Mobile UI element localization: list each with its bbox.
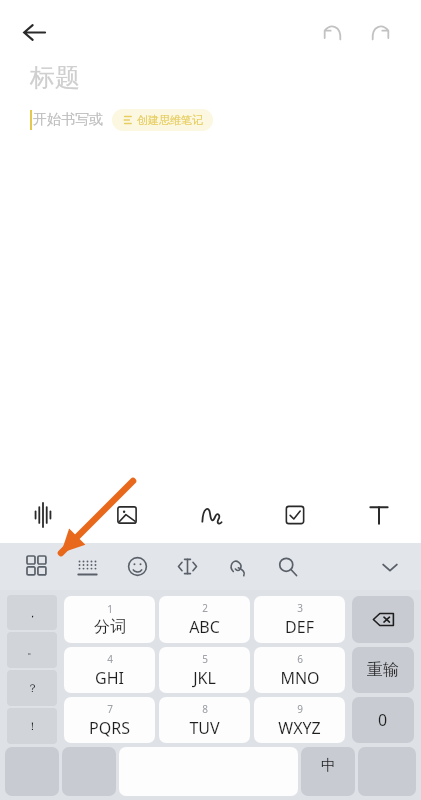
button[interactable]: Emoji [112, 543, 162, 590]
button[interactable]: Language [301, 747, 355, 796]
button[interactable]: 9 [254, 697, 345, 743]
staticText: ， [27, 606, 38, 620]
staticText: 。 [27, 643, 38, 657]
staticText: 重输 [367, 660, 399, 680]
staticText: PQRS [89, 717, 130, 739]
staticText: 0 [378, 709, 388, 731]
staticText: WXYZ [278, 717, 321, 739]
button[interactable]: Backspace [352, 596, 414, 643]
button[interactable]: Search [262, 543, 312, 590]
button[interactable]: Image [85, 486, 169, 543]
staticText: DEF [285, 616, 314, 638]
staticText: TUV [189, 717, 220, 739]
button[interactable]: 0 [352, 697, 414, 743]
staticText: 1 [107, 602, 113, 616]
staticText: 中 [321, 756, 336, 775]
button[interactable]: 6 [254, 647, 345, 693]
staticText: 9 [297, 702, 303, 716]
button[interactable]: 4 [64, 647, 155, 693]
button[interactable]: 8 [159, 697, 250, 743]
button[interactable]: ！ [7, 708, 57, 744]
staticText: ？ [27, 681, 38, 695]
staticText: 创建思维笔记 [137, 113, 203, 127]
staticText: 8 [202, 702, 208, 716]
button[interactable]: Move cursor [162, 543, 212, 590]
staticText: 分词 [94, 617, 126, 637]
button[interactable]: Panels [12, 543, 62, 590]
staticText: 5 [202, 652, 208, 666]
button[interactable]: Redo [360, 12, 400, 52]
staticText: MNO [280, 667, 320, 689]
button[interactable]: 。 [7, 632, 57, 668]
button[interactable]: Text [337, 486, 421, 543]
staticText: 2 [202, 601, 208, 615]
staticText: 开始书写或 [33, 111, 103, 129]
button[interactable]: 1 [64, 596, 155, 643]
button[interactable]: Handwriting [169, 486, 253, 543]
button[interactable]: Audio [0, 486, 85, 543]
staticText: 7 [107, 702, 113, 716]
staticText: ABC [189, 616, 220, 638]
button[interactable]: ， [7, 595, 57, 630]
staticText: JKL [193, 667, 216, 689]
staticText: ！ [27, 719, 38, 733]
staticText: 4 [107, 652, 113, 666]
button[interactable]: ？ [7, 670, 57, 706]
staticText: 3 [297, 601, 303, 615]
staticText: 6 [297, 652, 303, 666]
button[interactable]: Hide keyboard [363, 543, 417, 590]
button[interactable]: Clipboard [212, 543, 262, 590]
staticText: 标题 [30, 62, 80, 93]
button[interactable]: Back [14, 12, 54, 52]
staticText: GHI [95, 667, 124, 689]
button[interactable]: 重输 [352, 647, 414, 693]
button[interactable]: 5 [159, 647, 250, 693]
button[interactable]: 2 [159, 596, 250, 643]
button[interactable]: Keyboard [62, 543, 112, 590]
button[interactable]: 7 [64, 697, 155, 743]
button[interactable]: 创建思维笔记 [112, 109, 213, 131]
button[interactable]: 3 [254, 596, 345, 643]
button[interactable]: Checklist [253, 486, 337, 543]
button[interactable]: Undo [312, 12, 352, 52]
